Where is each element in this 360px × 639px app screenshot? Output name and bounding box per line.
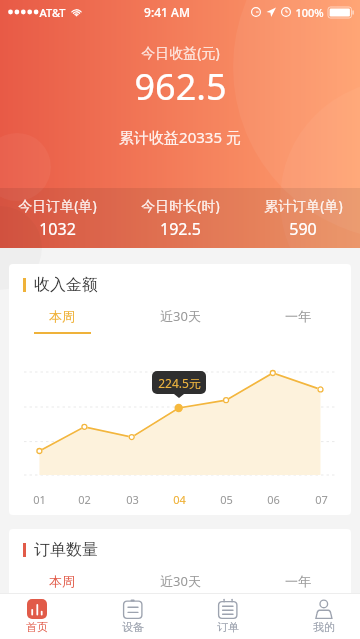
staticText: 一年 [285, 573, 311, 589]
staticText: 累计订单(单) [264, 196, 343, 215]
staticText: 06 [267, 492, 280, 507]
staticText: 224.5元 [158, 375, 201, 391]
button[interactable]: 本周 [27, 305, 97, 337]
staticText: 03 [126, 492, 139, 507]
button[interactable]: 近30天 [145, 570, 215, 602]
staticText: 设备 [122, 620, 144, 634]
button[interactable]: 订单 [200, 594, 256, 639]
button[interactable]: 近30天 [145, 305, 215, 337]
staticText: 590 [289, 218, 317, 240]
button[interactable]: 首页 [9, 594, 65, 639]
staticText: 订单数量 [34, 540, 98, 560]
button[interactable]: 一年 [263, 305, 333, 337]
staticText: 我的 [313, 620, 335, 634]
staticText: 今日订单(单) [18, 196, 97, 215]
staticText: 本周 [49, 573, 75, 589]
staticText: 订单 [217, 620, 239, 634]
button[interactable]: 一年 [263, 570, 333, 602]
staticText: 今日收益(元) [141, 43, 220, 62]
staticText: 近30天 [160, 572, 201, 590]
staticText: 一年 [285, 308, 311, 324]
staticText: 01 [33, 492, 46, 507]
button[interactable]: 累计订单(单) [253, 188, 353, 248]
button[interactable]: 今日时长(时) [130, 188, 230, 248]
staticText: 100% [295, 5, 324, 20]
staticText: 今日时长(时) [141, 196, 220, 215]
staticText: 05 [220, 492, 233, 507]
button[interactable]: 今日订单(单) [7, 188, 107, 248]
button[interactable]: 我的 [296, 594, 352, 639]
staticText: 192.5 [160, 218, 201, 240]
staticText: 07 [315, 492, 328, 507]
staticText: 962.5 [134, 62, 227, 111]
staticText: 02 [78, 492, 91, 507]
staticText: 首页 [26, 620, 48, 634]
staticText: 收入金额 [34, 275, 98, 295]
staticText: AT&T [39, 5, 66, 20]
staticText: 本周 [49, 308, 75, 324]
staticText: 04 [173, 492, 186, 507]
staticText: 累计收益20335 元 [119, 127, 241, 147]
staticText: 1032 [39, 218, 76, 240]
button[interactable]: 本周 [27, 570, 97, 602]
staticText: 9:41 AM [144, 4, 190, 20]
button[interactable]: 设备 [105, 594, 161, 639]
staticText: 近30天 [160, 307, 201, 325]
